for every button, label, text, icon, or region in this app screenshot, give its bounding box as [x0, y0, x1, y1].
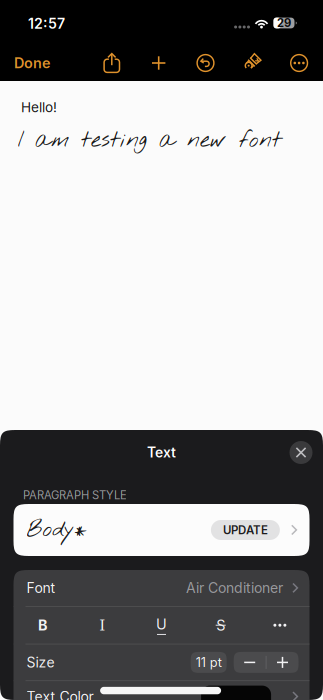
staticText: B [38, 616, 48, 634]
button[interactable]: Add [135, 45, 182, 81]
button[interactable]: Italic [73, 607, 132, 644]
button[interactable]: Markup [229, 45, 276, 81]
staticText: U [156, 615, 167, 633]
staticText: Air Conditioner [186, 579, 283, 596]
staticText: Hello! [21, 99, 57, 115]
button[interactable]: Underline [132, 607, 191, 644]
staticText: I am testing a new font [18, 125, 282, 156]
staticText: Done [14, 54, 51, 72]
staticText: UPDATE [223, 523, 268, 537]
button[interactable]: Strikethrough [191, 607, 250, 644]
staticText: Text [147, 444, 176, 461]
staticText: 29 [277, 16, 291, 30]
button[interactable]: Body* [13, 504, 309, 556]
button[interactable]: Undo [182, 45, 229, 81]
button[interactable]: Increase size [266, 652, 298, 673]
staticText: 12:57 [28, 15, 65, 32]
button[interactable]: Font [13, 570, 309, 606]
staticText: Text Color [26, 688, 93, 700]
button[interactable]: More formatting [250, 607, 309, 644]
button[interactable]: Share [88, 45, 135, 81]
button[interactable]: Done [0, 45, 72, 81]
button[interactable]: Decrease size [234, 652, 266, 673]
staticText: PARAGRAPH STYLE [23, 488, 127, 502]
staticText: Size [26, 654, 54, 671]
button[interactable]: Bold [13, 607, 73, 644]
staticText: 11 pt [196, 655, 222, 670]
staticText: S [216, 616, 225, 634]
staticText: Body* [26, 515, 86, 545]
button[interactable]: Close [285, 436, 317, 468]
staticText: Font [26, 579, 55, 596]
button[interactable]: More [276, 45, 322, 81]
staticText: I [99, 616, 105, 634]
